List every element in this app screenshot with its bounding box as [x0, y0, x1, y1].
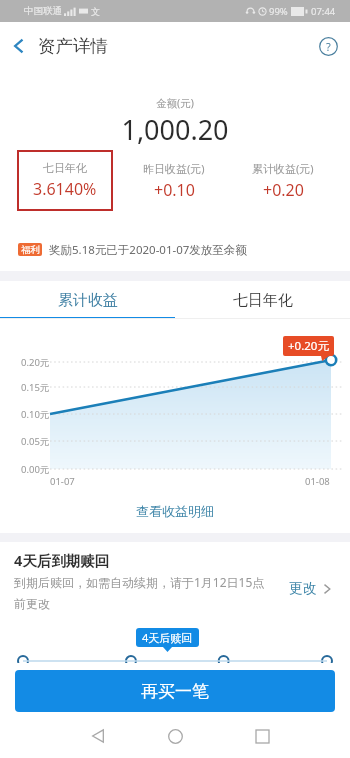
staticText: 累计收益(元): [252, 161, 314, 176]
button[interactable]: 查看收益明细: [0, 494, 350, 528]
staticText: 1,000.20: [0, 111, 350, 148]
button[interactable]: 更改: [289, 580, 332, 598]
staticText: 福利: [21, 244, 40, 256]
staticText: 01-07: [50, 475, 75, 488]
staticText: 99%: [269, 5, 288, 18]
staticText: 昨日收益(元): [143, 161, 205, 176]
staticText: 奖励5.18元已于2020-01-07发放至余额: [49, 242, 247, 256]
button[interactable]: Recents: [246, 720, 278, 752]
staticText: 文: [91, 6, 100, 17]
staticText: 3.6140%: [33, 178, 97, 200]
staticText: ?: [326, 39, 331, 54]
staticText: 4天后赎回: [142, 630, 193, 645]
staticText: 07:44: [311, 5, 336, 18]
staticText: 0.20元: [21, 356, 50, 369]
button[interactable]: 累计收益: [0, 281, 175, 319]
button[interactable]: 七日年化: [175, 281, 350, 319]
staticText: 七日年化: [233, 291, 293, 310]
staticText: 0.00元: [21, 463, 50, 476]
button[interactable]: Home: [159, 720, 191, 752]
button[interactable]: Help: [306, 22, 350, 70]
staticText: 再买一笔: [141, 681, 209, 702]
staticText: 更改: [289, 580, 317, 598]
staticText: 0.05元: [21, 435, 50, 448]
staticText: 中国联通: [24, 5, 62, 17]
staticText: +0.20: [263, 179, 304, 201]
staticText: 到期后赎回，如需自动续期，请于1月12日15点前更改: [14, 574, 276, 611]
staticText: 七日年化: [43, 161, 87, 175]
staticText: +0.20元: [288, 338, 329, 354]
staticText: 4天后到期赎回: [14, 550, 110, 570]
button[interactable]: Back: [0, 22, 38, 70]
staticText: +0.10: [154, 179, 195, 201]
button[interactable]: 再买一笔: [15, 670, 335, 712]
staticText: 资产详情: [38, 35, 108, 57]
staticText: 01-08: [305, 475, 330, 488]
staticText: 0.10元: [21, 408, 50, 421]
staticText: 累计收益: [58, 291, 118, 310]
button[interactable]: Back: [82, 720, 114, 752]
staticText: 金额(元): [0, 96, 350, 110]
staticText: 查看收益明细: [136, 503, 214, 519]
staticText: 0.15元: [21, 381, 50, 394]
